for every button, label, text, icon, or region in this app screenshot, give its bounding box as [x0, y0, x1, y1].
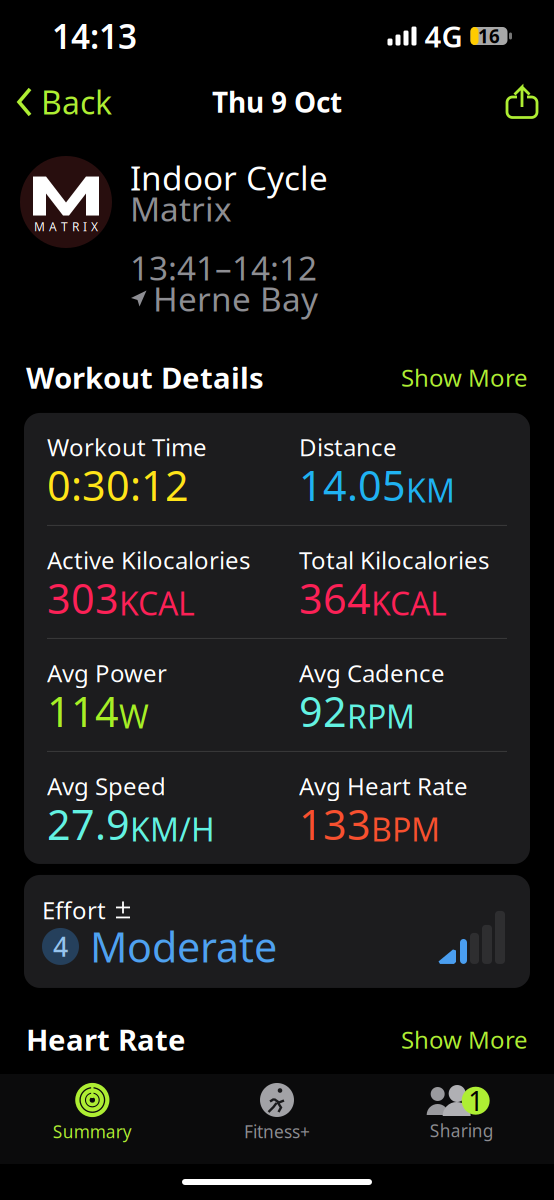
button[interactable]: Show More — [401, 361, 528, 393]
staticText: Thu 9 Oct — [212, 83, 342, 121]
staticText: I — [83, 218, 87, 234]
staticText: Active Kilocalories — [47, 544, 250, 576]
staticText: 16 — [478, 24, 500, 48]
staticText: 14:13 — [52, 14, 137, 58]
staticText: KCAL — [119, 582, 195, 624]
staticText: Avg Power — [47, 657, 167, 689]
staticText: A — [49, 218, 57, 234]
staticText: 27.9 — [47, 796, 130, 851]
staticText: 133 — [299, 796, 371, 851]
staticText: Distance — [299, 431, 397, 463]
staticText: 303 — [47, 570, 119, 625]
staticText: RPM — [347, 695, 415, 737]
button[interactable]: Fitness+ — [185, 1074, 369, 1143]
staticText: 1 — [468, 1083, 483, 1118]
staticText: BPM — [371, 808, 440, 850]
staticText: Workout Details — [26, 358, 264, 397]
staticText: Sharing — [430, 1119, 494, 1142]
staticText: 14.05 — [299, 457, 406, 512]
staticText: Avg Heart Rate — [299, 770, 468, 802]
button[interactable]: Effort — [24, 875, 530, 988]
staticText: 0:30:12 — [47, 457, 189, 512]
staticText: KM — [406, 469, 455, 511]
staticText: T — [61, 218, 68, 234]
staticText: Matrix — [130, 186, 232, 231]
staticText: Avg Speed — [47, 770, 166, 802]
staticText: 13:41–14:12 — [130, 245, 317, 290]
button[interactable]: Share — [492, 80, 552, 124]
staticText: M — [34, 218, 45, 234]
staticText: Total Kilocalories — [299, 544, 489, 576]
staticText: KM/H — [130, 808, 215, 850]
button[interactable]: Back — [2, 74, 126, 130]
button[interactable]: 1 — [369, 1075, 554, 1142]
staticText: 364 — [299, 570, 371, 625]
staticText: Effort — [42, 894, 106, 926]
staticText: Back — [41, 81, 112, 123]
staticText: KCAL — [371, 582, 447, 624]
staticText: Indoor Cycle — [130, 155, 328, 200]
staticText: Fitness+ — [244, 1120, 310, 1143]
staticText: 4G — [424, 16, 462, 55]
staticText: Workout Time — [47, 431, 207, 463]
staticText: Moderate — [90, 919, 277, 974]
button[interactable]: Summary — [0, 1074, 185, 1143]
staticText: Show More — [401, 361, 528, 393]
staticText: 4 — [53, 929, 68, 964]
staticText: 114 — [47, 683, 119, 738]
staticText: R — [72, 218, 79, 234]
staticText: Herne Bay — [153, 276, 318, 321]
staticText: 92 — [299, 683, 347, 738]
staticText: Show More — [401, 1023, 528, 1055]
staticText: W — [119, 695, 149, 737]
staticText: X — [91, 218, 98, 234]
staticText: Heart Rate — [26, 1020, 186, 1059]
staticText: Summary — [53, 1120, 132, 1143]
staticText: Avg Cadence — [299, 657, 445, 689]
button[interactable]: Show More — [401, 1023, 528, 1055]
